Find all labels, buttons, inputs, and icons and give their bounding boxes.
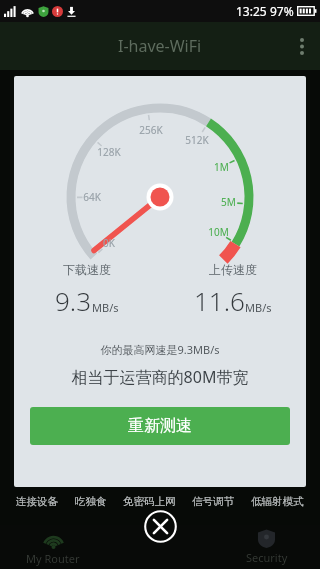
staticText: MB/s <box>92 300 119 315</box>
staticText: 1M <box>214 160 229 174</box>
button[interactable]: 低辐射模式 <box>251 495 304 508</box>
button[interactable]: More options <box>284 22 320 70</box>
staticText: 重新测速 <box>128 416 192 436</box>
button[interactable]: 连接设备 <box>16 495 58 508</box>
staticText: 连接设备 <box>16 495 58 508</box>
staticText: 免密码上网 <box>123 495 176 508</box>
staticText: 你的最高网速是9.3MB/s <box>14 342 306 357</box>
button[interactable]: Security <box>213 525 320 569</box>
button[interactable]: 信号调节 <box>192 495 234 508</box>
staticText: 13:25 <box>236 3 267 19</box>
staticText: Security <box>246 550 288 565</box>
staticText: 9.3 <box>55 283 92 318</box>
staticText: 下载速度 <box>63 262 111 277</box>
staticText: 吃独食 <box>75 495 107 508</box>
staticText: I-have-WiFi <box>118 35 202 57</box>
staticText: 97% <box>270 3 294 19</box>
staticText: 512K <box>185 133 209 147</box>
button[interactable]: My Router <box>0 525 106 569</box>
staticText: 11.6 <box>194 283 245 318</box>
staticText: 0K <box>103 236 115 250</box>
staticText: 256K <box>139 123 163 137</box>
staticText: MB/s <box>245 300 272 315</box>
staticText: My Router <box>26 551 80 566</box>
staticText: 10M <box>208 225 229 239</box>
staticText: 64K <box>83 190 101 204</box>
button[interactable]: 吃独食 <box>75 495 107 508</box>
button[interactable]: 免密码上网 <box>123 495 176 508</box>
button[interactable]: Close <box>144 510 177 543</box>
staticText: 上传速度 <box>209 262 257 277</box>
staticText: 信号调节 <box>192 495 234 508</box>
staticText: 128K <box>97 145 121 159</box>
staticText: 低辐射模式 <box>251 495 304 508</box>
button[interactable]: 重新测速 <box>30 407 290 445</box>
staticText: 相当于运营商的80M带宽 <box>14 366 306 388</box>
staticText: 5M <box>221 195 236 209</box>
